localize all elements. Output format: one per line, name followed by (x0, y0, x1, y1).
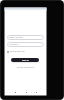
button[interactable]: Remember me (7, 50, 25, 53)
button[interactable]: Sign In (11, 58, 39, 62)
staticText: Remember me (10, 50, 25, 53)
button[interactable]: Email Address (7, 35, 44, 40)
staticText: Sign In (22, 59, 29, 62)
staticText: Email Address (9, 36, 23, 39)
button[interactable]: Forgot Password? (17, 66, 35, 69)
button[interactable]: Password (7, 42, 44, 47)
staticText: Password (9, 43, 19, 46)
